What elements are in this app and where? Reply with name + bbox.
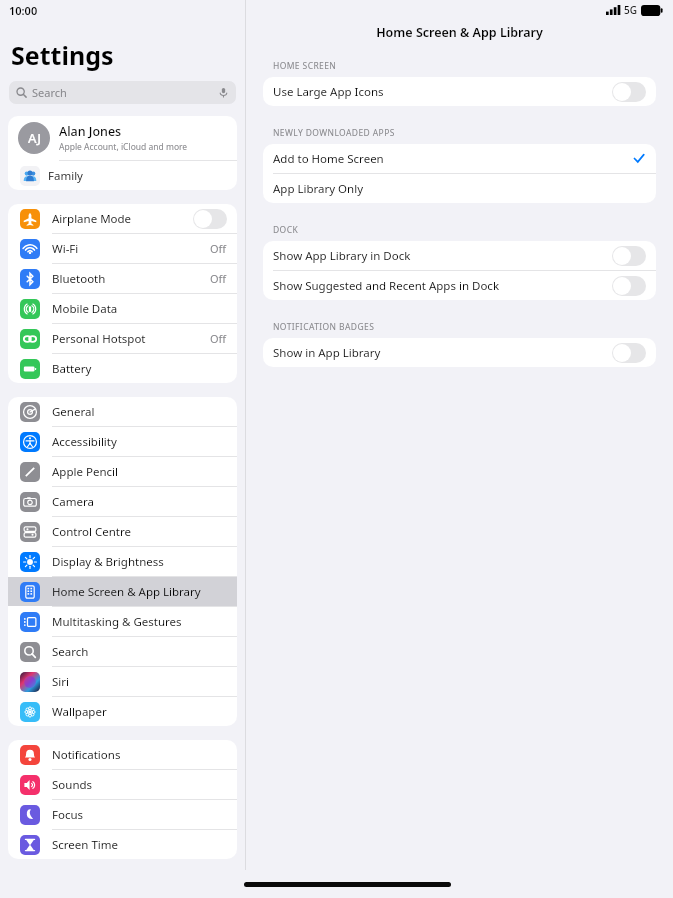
staticText: Family bbox=[48, 168, 83, 184]
staticText: Display & Brightness bbox=[52, 554, 164, 570]
staticText: DOCK bbox=[273, 224, 299, 236]
button[interactable]: Airplane Mode bbox=[8, 204, 237, 233]
button[interactable]: Add to Home Screen bbox=[263, 144, 656, 173]
staticText: Focus bbox=[52, 807, 84, 823]
staticText: Control Centre bbox=[52, 524, 131, 540]
button[interactable]: Search bbox=[9, 81, 236, 104]
staticText: Siri bbox=[52, 674, 69, 690]
staticText: Off bbox=[210, 241, 227, 256]
staticText: Apple Account, iCloud and more bbox=[59, 141, 188, 153]
staticText: Airplane Mode bbox=[52, 211, 132, 227]
button[interactable]: Wallpaper bbox=[8, 697, 237, 726]
staticText: Settings bbox=[11, 38, 114, 72]
button[interactable]: Display & Brightness bbox=[8, 547, 237, 576]
button[interactable]: Personal Hotspot bbox=[8, 324, 237, 353]
staticText: Notifications bbox=[52, 747, 121, 763]
button[interactable]: Family bbox=[8, 161, 237, 190]
staticText: Show in App Library bbox=[273, 345, 381, 361]
button[interactable]: Control Centre bbox=[8, 517, 237, 546]
button[interactable]: Bluetooth bbox=[8, 264, 237, 293]
button[interactable]: Search bbox=[8, 637, 237, 666]
button[interactable]: Toggle bbox=[612, 276, 646, 296]
button[interactable]: Camera bbox=[8, 487, 237, 516]
staticText: Accessibility bbox=[52, 434, 117, 450]
staticText: AJ bbox=[28, 129, 41, 147]
staticText: 5G bbox=[624, 3, 637, 17]
button[interactable]: Apple Pencil bbox=[8, 457, 237, 486]
staticText: Bluetooth bbox=[52, 271, 106, 287]
button[interactable]: Home Screen & App Library bbox=[8, 577, 237, 606]
button[interactable]: Toggle bbox=[612, 246, 646, 266]
staticText: Wallpaper bbox=[52, 704, 107, 720]
staticText: Show Suggested and Recent Apps in Dock bbox=[273, 278, 500, 294]
staticText: NEWLY DOWNLOADED APPS bbox=[273, 127, 395, 139]
staticText: Off bbox=[210, 331, 227, 346]
button[interactable]: Notifications bbox=[8, 740, 237, 769]
staticText: Mobile Data bbox=[52, 301, 118, 317]
staticText: Show App Library in Dock bbox=[273, 248, 411, 264]
staticText: NOTIFICATION BADGES bbox=[273, 321, 375, 333]
button[interactable]: Toggle bbox=[193, 209, 227, 229]
button[interactable]: Screen Time bbox=[8, 830, 237, 859]
staticText: General bbox=[52, 404, 95, 420]
staticText: Add to Home Screen bbox=[273, 151, 384, 167]
button[interactable]: App Library Only bbox=[263, 174, 656, 203]
button[interactable]: Accessibility bbox=[8, 427, 237, 456]
button[interactable]: Focus bbox=[8, 800, 237, 829]
button[interactable]: Battery bbox=[8, 354, 237, 383]
staticText: HOME SCREEN bbox=[273, 60, 337, 72]
staticText: Battery bbox=[52, 361, 92, 377]
staticText: Multitasking & Gestures bbox=[52, 614, 182, 630]
button[interactable]: Use Large App Icons bbox=[263, 77, 656, 106]
button[interactable]: Toggle bbox=[612, 343, 646, 363]
staticText: Screen Time bbox=[52, 837, 119, 853]
button[interactable]: Toggle bbox=[612, 82, 646, 102]
staticText: Camera bbox=[52, 494, 94, 510]
staticText: Wi-Fi bbox=[52, 241, 79, 257]
staticText: App Library Only bbox=[273, 181, 364, 197]
staticText: Use Large App Icons bbox=[273, 84, 384, 100]
button[interactable]: AJ bbox=[8, 116, 237, 160]
staticText: 10:00 bbox=[9, 3, 38, 18]
staticText: Search bbox=[52, 644, 89, 660]
button[interactable]: Show in App Library bbox=[263, 338, 656, 367]
button[interactable]: Show App Library in Dock bbox=[263, 241, 656, 270]
staticText: Search bbox=[32, 85, 67, 100]
staticText: Alan Jones bbox=[59, 123, 122, 140]
staticText: Apple Pencil bbox=[52, 464, 118, 480]
button[interactable]: Show Suggested and Recent Apps in Dock bbox=[263, 271, 656, 300]
staticText: Sounds bbox=[52, 777, 93, 793]
staticText: Home Screen & App Library bbox=[246, 24, 673, 41]
button[interactable]: Wi-Fi bbox=[8, 234, 237, 263]
button[interactable]: Multitasking & Gestures bbox=[8, 607, 237, 636]
button[interactable]: General bbox=[8, 397, 237, 426]
button[interactable]: Siri bbox=[8, 667, 237, 696]
button[interactable]: Mobile Data bbox=[8, 294, 237, 323]
staticText: Off bbox=[210, 271, 227, 286]
staticText: Personal Hotspot bbox=[52, 331, 146, 347]
staticText: Home Screen & App Library bbox=[52, 584, 201, 600]
button[interactable]: Sounds bbox=[8, 770, 237, 799]
